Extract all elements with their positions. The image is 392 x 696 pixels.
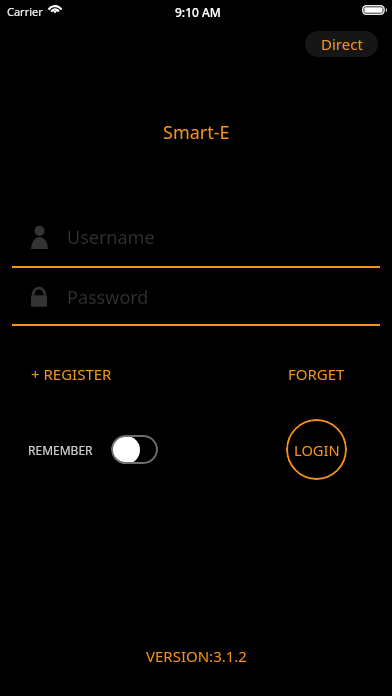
staticText: Carrier xyxy=(7,4,43,19)
staticText: 9:10 AM xyxy=(175,4,221,20)
staticText: LOGIN xyxy=(294,440,340,460)
staticText: Password xyxy=(67,285,149,310)
button[interactable]: Username xyxy=(12,214,380,268)
button[interactable]: LOGIN xyxy=(286,419,347,480)
button[interactable]: Remember me toggle xyxy=(111,435,158,464)
staticText: VERSION:3.1.2 xyxy=(146,646,247,666)
staticText: REMEMBER xyxy=(28,442,93,458)
button[interactable]: Password xyxy=(12,274,380,326)
button[interactable]: Direct xyxy=(305,31,378,57)
staticText: + REGISTER xyxy=(31,364,112,384)
button[interactable]: + REGISTER xyxy=(31,364,112,384)
staticText: Direct xyxy=(321,34,363,54)
button[interactable]: FORGET xyxy=(288,364,345,384)
staticText: Username xyxy=(67,225,155,250)
staticText: Smart-E xyxy=(163,120,230,145)
staticText: FORGET xyxy=(288,364,345,384)
